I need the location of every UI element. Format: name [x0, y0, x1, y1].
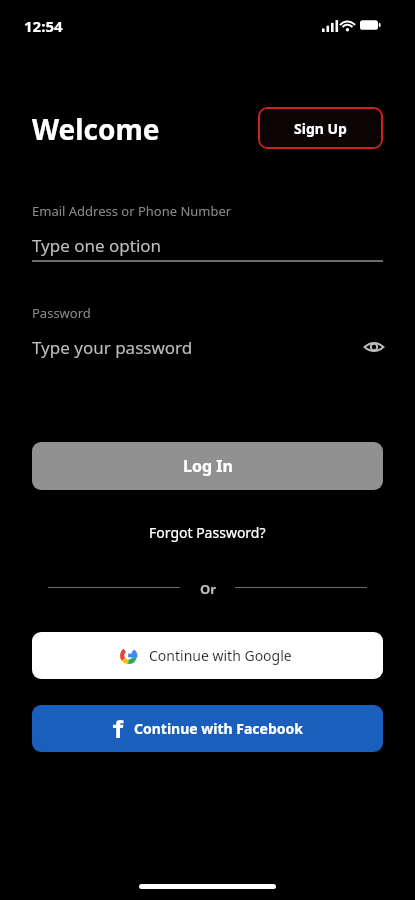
staticText: Email Address or Phone Number — [32, 202, 232, 220]
button[interactable]: Sign Up — [258, 107, 383, 149]
button[interactable]: Log In — [32, 442, 383, 490]
button[interactable]: Continue with Facebook — [32, 705, 383, 752]
staticText: Password — [32, 304, 91, 322]
staticText: Log In — [183, 455, 233, 477]
staticText: Forgot Password? — [149, 523, 266, 542]
button[interactable]: Type your password — [32, 330, 383, 364]
staticText: Continue with Google — [149, 646, 292, 665]
staticText: Type one option — [32, 234, 162, 257]
staticText: 12:54 — [24, 16, 63, 36]
staticText: Welcome — [32, 110, 160, 148]
button[interactable]: Forgot Password? — [135, 519, 280, 545]
button[interactable]: Show password — [358, 331, 390, 363]
staticText: Or — [200, 580, 217, 598]
button[interactable]: Continue with Google — [32, 632, 383, 679]
staticText: Sign Up — [294, 119, 347, 138]
staticText: Continue with Facebook — [134, 719, 303, 738]
staticText: Type your password — [32, 336, 193, 359]
button[interactable]: Type one option — [32, 228, 383, 262]
